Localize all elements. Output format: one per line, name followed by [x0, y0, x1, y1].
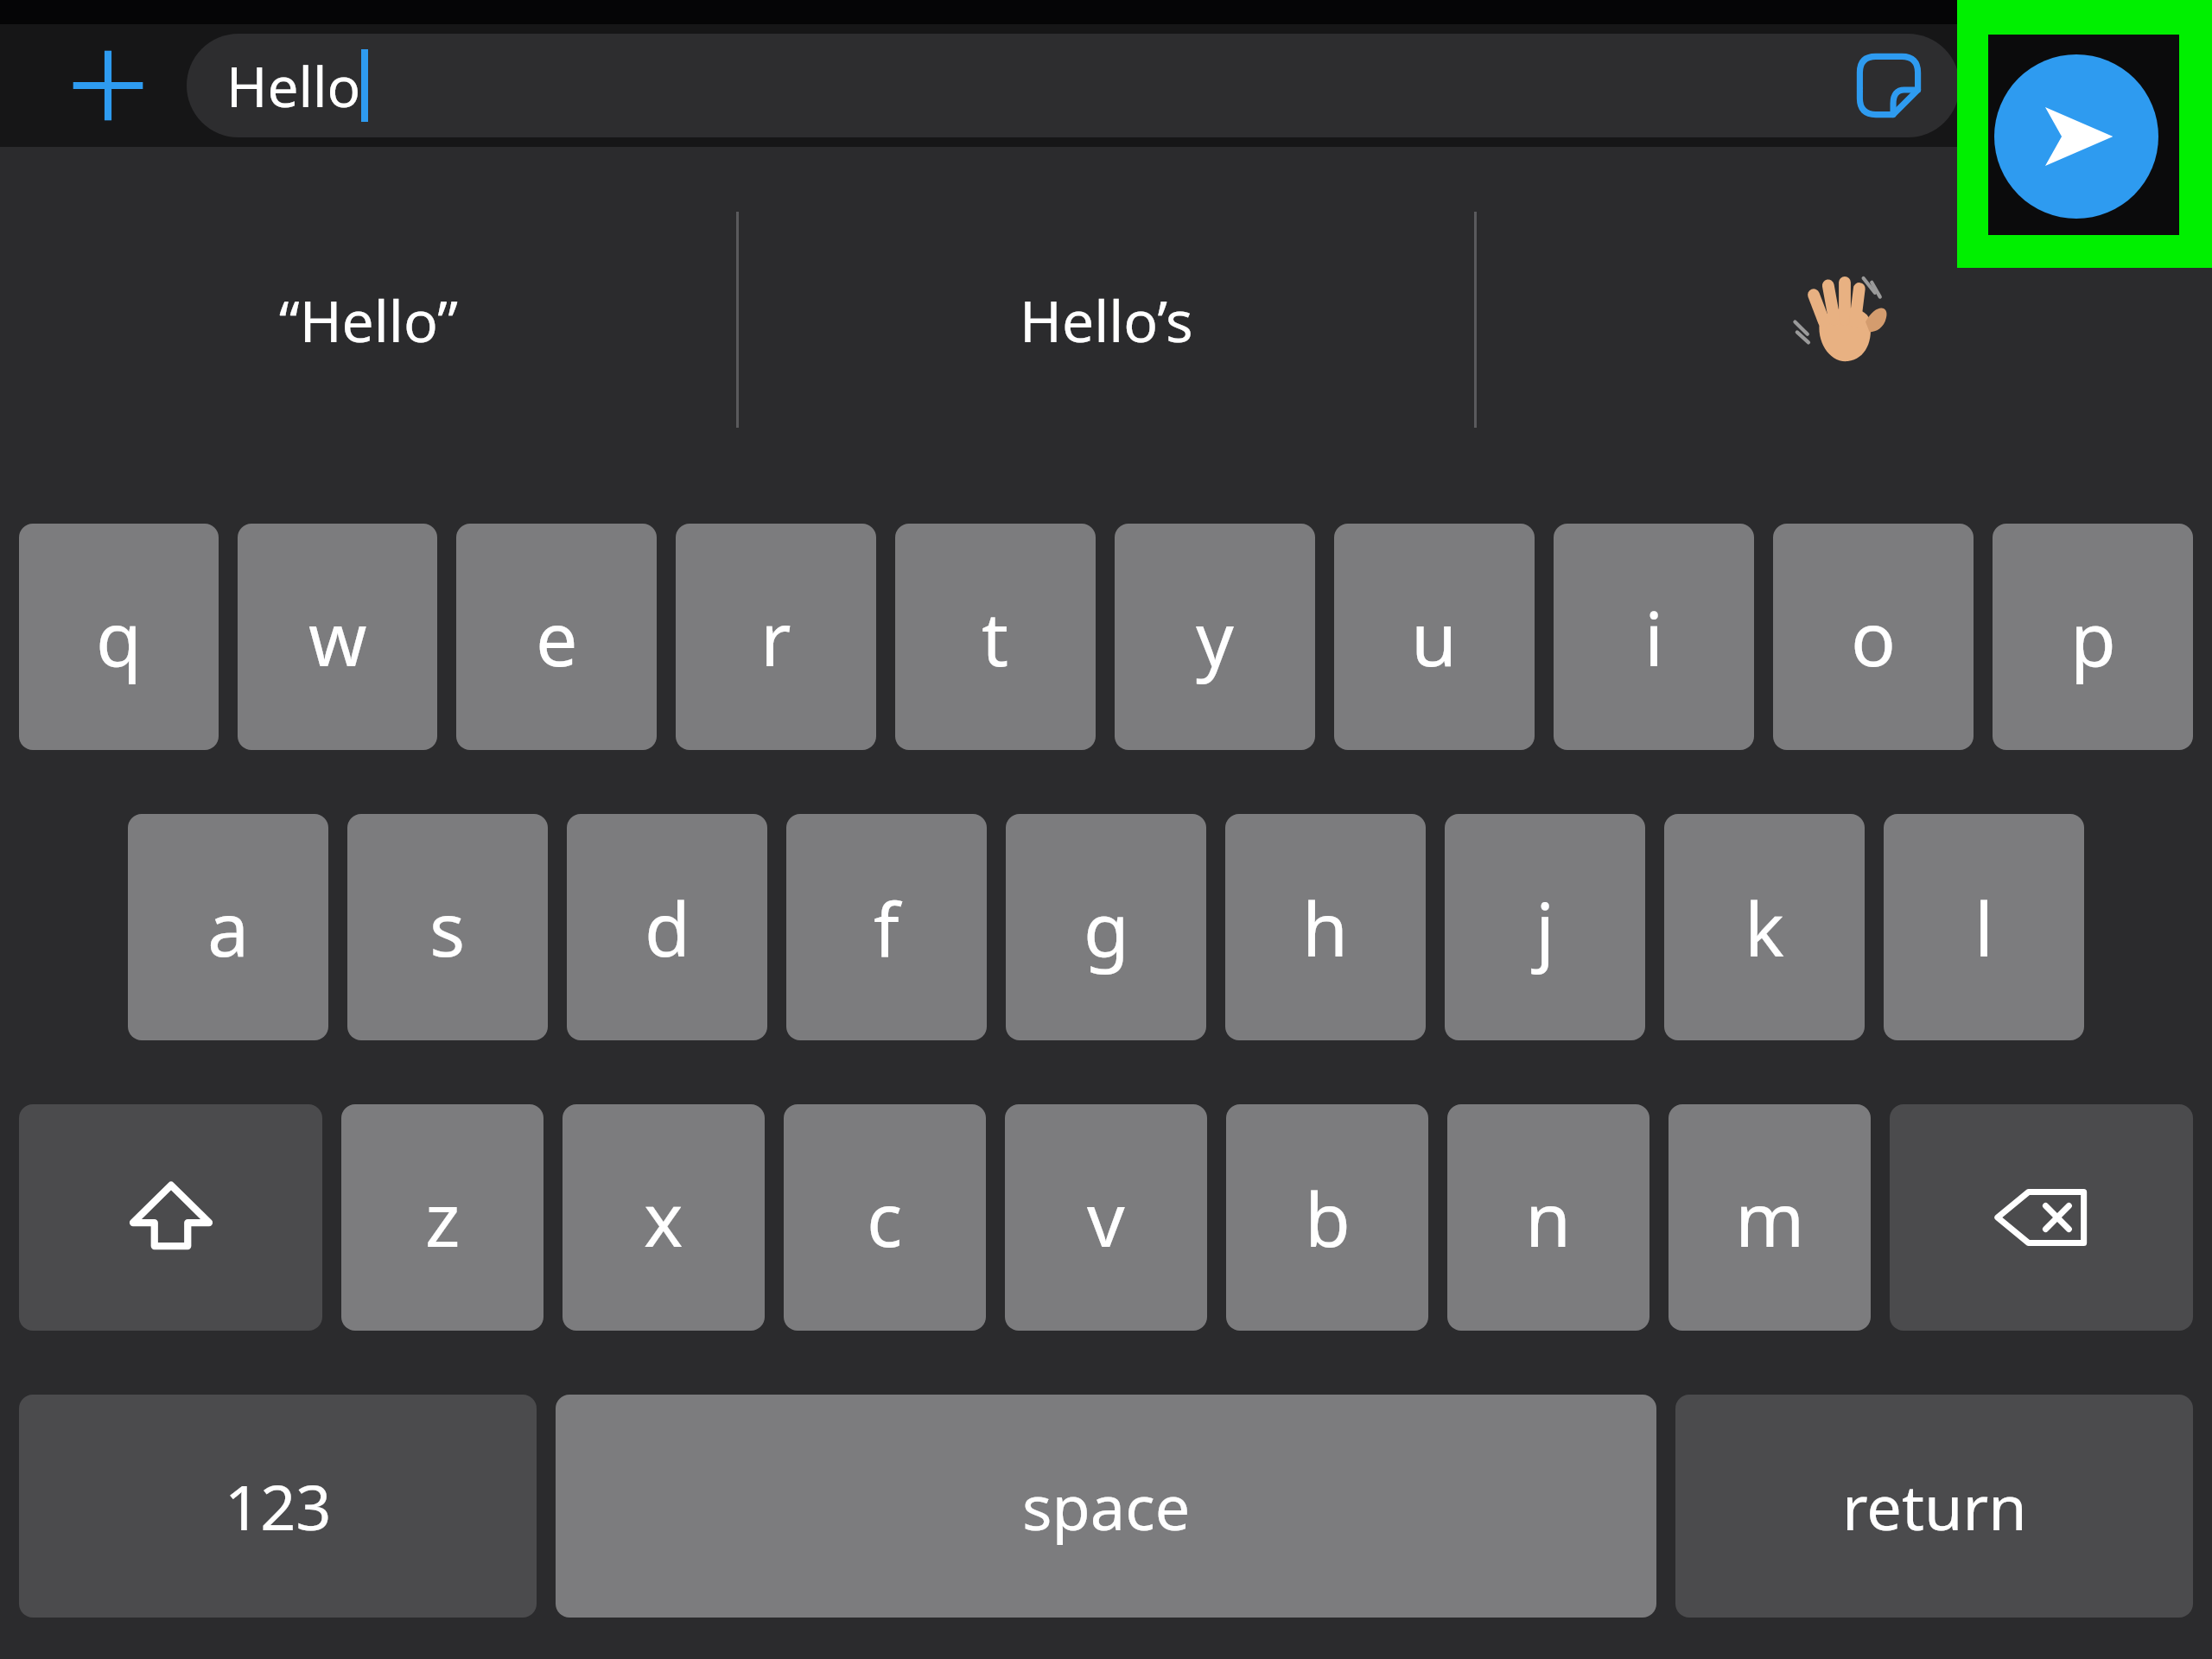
button[interactable]: w — [238, 524, 437, 750]
button[interactable]: s — [347, 814, 548, 1040]
button[interactable]: Hello — [187, 34, 1960, 137]
staticText: a — [207, 877, 250, 978]
button[interactable]: g — [1006, 814, 1206, 1040]
button[interactable]: c — [784, 1104, 986, 1331]
button[interactable]: f — [786, 814, 987, 1040]
button[interactable]: y — [1115, 524, 1315, 750]
staticText: w — [308, 587, 367, 688]
button[interactable]: l — [1884, 814, 2084, 1040]
staticText: c — [867, 1167, 903, 1268]
button[interactable]: m — [1669, 1104, 1871, 1331]
button[interactable]: Backspace — [1890, 1104, 2193, 1331]
button[interactable]: Send — [1998, 24, 2162, 147]
staticText: f — [874, 877, 899, 978]
staticText: b — [1305, 1167, 1351, 1268]
staticText: return — [1842, 1464, 2027, 1548]
button[interactable]: r — [676, 524, 876, 750]
button[interactable]: p — [1993, 524, 2193, 750]
button[interactable]: j — [1445, 814, 1645, 1040]
button[interactable]: Stickers — [1849, 46, 1929, 125]
staticText: n — [1525, 1167, 1572, 1268]
button[interactable]: d — [567, 814, 767, 1040]
staticText: p — [2070, 587, 2116, 688]
staticText: l — [1974, 877, 1994, 978]
button[interactable]: a — [128, 814, 328, 1040]
staticText: u — [1411, 587, 1458, 688]
staticText: “Hello” — [279, 281, 458, 359]
staticText: d — [645, 877, 690, 978]
staticText: z — [425, 1167, 461, 1268]
staticText: h — [1302, 877, 1349, 978]
staticText: t — [982, 587, 1009, 688]
button[interactable]: z — [341, 1104, 543, 1331]
staticText: s — [429, 877, 466, 978]
staticText: q — [96, 587, 142, 688]
button[interactable]: e — [456, 524, 657, 750]
button[interactable]: v — [1005, 1104, 1207, 1331]
staticText: r — [760, 587, 791, 688]
staticText: i — [1644, 587, 1664, 688]
button[interactable]: t — [895, 524, 1096, 750]
button[interactable]: space — [556, 1395, 1656, 1618]
button[interactable]: o — [1773, 524, 1974, 750]
staticText: o — [1851, 587, 1897, 688]
button[interactable]: n — [1447, 1104, 1649, 1331]
staticText: x — [644, 1167, 683, 1268]
button[interactable]: Shift — [19, 1104, 322, 1331]
button[interactable]: Hello’s — [739, 147, 1474, 493]
button[interactable]: x — [563, 1104, 765, 1331]
button[interactable]: k — [1664, 814, 1865, 1040]
staticText: m — [1735, 1167, 1805, 1268]
staticText: space — [1022, 1464, 1191, 1548]
button[interactable]: return — [1675, 1395, 2193, 1618]
staticText: 123 — [225, 1464, 332, 1548]
button[interactable]: b — [1226, 1104, 1428, 1331]
button[interactable]: u — [1334, 524, 1535, 750]
button[interactable]: Add attachment — [60, 38, 156, 133]
button[interactable]: h — [1225, 814, 1426, 1040]
staticText: k — [1745, 877, 1784, 978]
staticText: Hello — [226, 48, 361, 124]
staticText: y — [1196, 587, 1234, 688]
staticText: g — [1084, 877, 1129, 978]
staticText: e — [536, 587, 578, 688]
staticText: j — [1535, 877, 1555, 978]
staticText: v — [1087, 1167, 1125, 1268]
button[interactable]: “Hello” — [0, 147, 736, 493]
button[interactable]: Waving hand emoji — [1477, 147, 2212, 493]
button[interactable]: Send message — [1994, 54, 2158, 219]
button[interactable]: 123 — [19, 1395, 537, 1618]
staticText: Hello’s — [1020, 281, 1193, 359]
button[interactable]: i — [1554, 524, 1754, 750]
button[interactable]: q — [19, 524, 219, 750]
